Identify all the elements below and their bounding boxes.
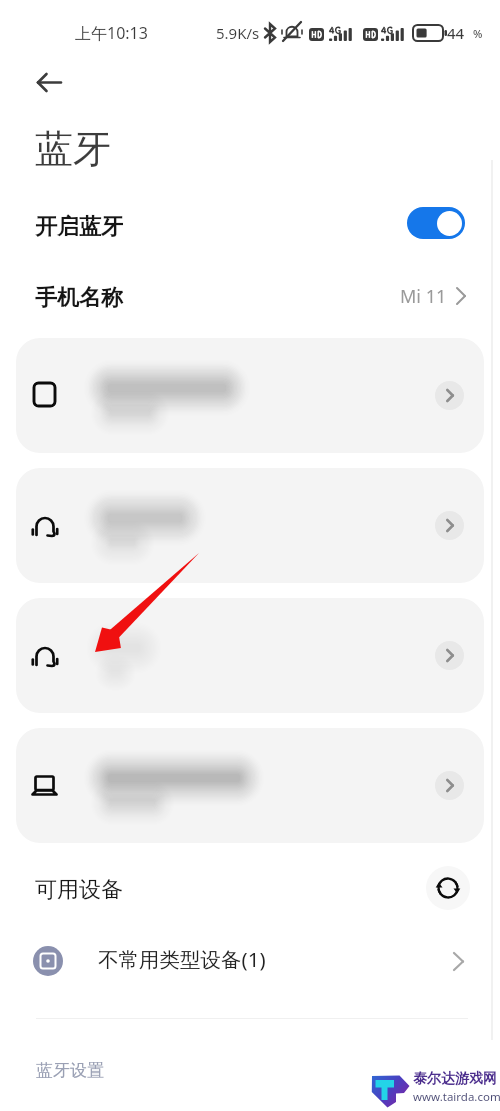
- button[interactable]: 蓝牙设置: [36, 1060, 104, 1081]
- staticText: 44: [447, 23, 465, 43]
- staticText: 上午10:13: [75, 22, 148, 44]
- other: Annotation arrow: [0, 0, 500, 1111]
- button[interactable]: [16, 598, 484, 713]
- staticText: 泰尔达游戏网: [413, 1070, 497, 1088]
- button[interactable]: Refresh: [426, 866, 470, 910]
- staticText: www.tairda.com: [413, 1089, 500, 1105]
- button[interactable]: 不常用类型设备(1): [0, 932, 500, 990]
- button[interactable]: [16, 338, 484, 453]
- button[interactable]: 手机名称: [0, 268, 500, 324]
- staticText: 蓝牙: [35, 125, 111, 173]
- staticText: %: [473, 26, 483, 41]
- staticText: 开启蓝牙: [35, 213, 123, 241]
- button[interactable]: [16, 468, 484, 583]
- staticText: Mi 11: [400, 284, 447, 309]
- staticText: 可用设备: [35, 876, 123, 904]
- staticText: 5.9K/s: [216, 23, 260, 43]
- button[interactable]: 开启蓝牙: [0, 196, 500, 256]
- button[interactable]: [16, 728, 484, 843]
- staticText: 手机名称: [35, 284, 123, 312]
- button[interactable]: Back: [26, 60, 71, 105]
- staticText: 不常用类型设备(1): [98, 945, 266, 973]
